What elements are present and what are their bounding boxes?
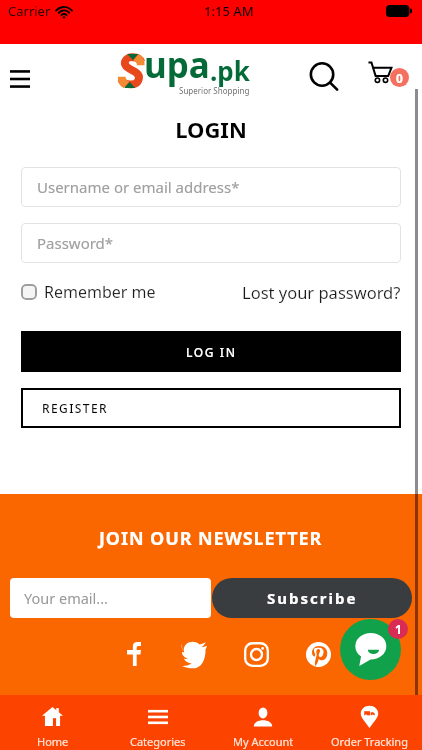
button[interactable]: REGISTER xyxy=(21,388,401,428)
staticText: Superior Shopping xyxy=(179,85,250,96)
staticText: upa xyxy=(144,41,210,89)
staticText: Order Tracking xyxy=(331,734,408,749)
staticText: Categories xyxy=(130,734,186,749)
button[interactable]: Pinterest xyxy=(306,639,331,669)
button[interactable]: Facebook xyxy=(121,639,147,669)
staticText: JOIN OUR NEWSLETTER xyxy=(99,526,323,551)
staticText: LOG IN xyxy=(186,344,237,360)
button[interactable]: Categories xyxy=(105,695,210,750)
button[interactable]: My Account xyxy=(210,695,316,750)
button[interactable]: Search xyxy=(307,60,341,94)
button[interactable]: Remember me xyxy=(21,281,156,303)
button[interactable]: Twitter xyxy=(182,639,207,669)
staticText: Your email... xyxy=(24,588,108,608)
staticText: Home xyxy=(37,734,69,749)
staticText: Username or email address* xyxy=(37,177,240,197)
staticText: .pk xyxy=(210,53,250,88)
staticText: 1:15 AM xyxy=(204,2,254,20)
button[interactable]: Cart xyxy=(368,61,398,91)
staticText: LOGIN xyxy=(21,114,401,144)
button[interactable]: Lost your password? xyxy=(242,281,401,303)
staticText: Password* xyxy=(37,233,114,253)
button[interactable]: Username or email address* xyxy=(21,167,401,207)
button[interactable]: Home xyxy=(0,695,105,750)
staticText: 0 xyxy=(396,70,403,86)
staticText: My Account xyxy=(233,734,294,749)
staticText: 1 xyxy=(395,621,402,637)
button[interactable]: Subscribe xyxy=(212,578,412,618)
button[interactable]: Order Tracking xyxy=(316,695,422,750)
button[interactable]: Password* xyxy=(21,223,401,263)
staticText: REGISTER xyxy=(42,400,109,416)
button[interactable]: LOG IN xyxy=(21,331,401,372)
button[interactable]: Your email... xyxy=(10,578,211,618)
button[interactable]: Chat xyxy=(340,619,401,680)
staticText: Carrier xyxy=(8,2,51,20)
button[interactable]: Menu xyxy=(4,63,36,95)
button[interactable]: Instagram xyxy=(244,639,269,669)
staticText: Subscribe xyxy=(267,588,358,608)
staticText: Remember me xyxy=(44,281,156,303)
